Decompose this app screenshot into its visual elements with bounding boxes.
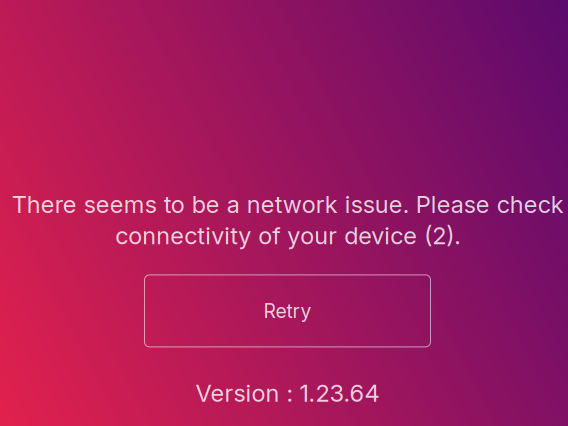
staticText: Version : 1.23.64: [195, 379, 379, 408]
staticText: There seems to be a network issue. Pleas…: [11, 190, 563, 250]
button[interactable]: Retry: [144, 275, 430, 347]
staticText: Retry: [263, 299, 311, 323]
